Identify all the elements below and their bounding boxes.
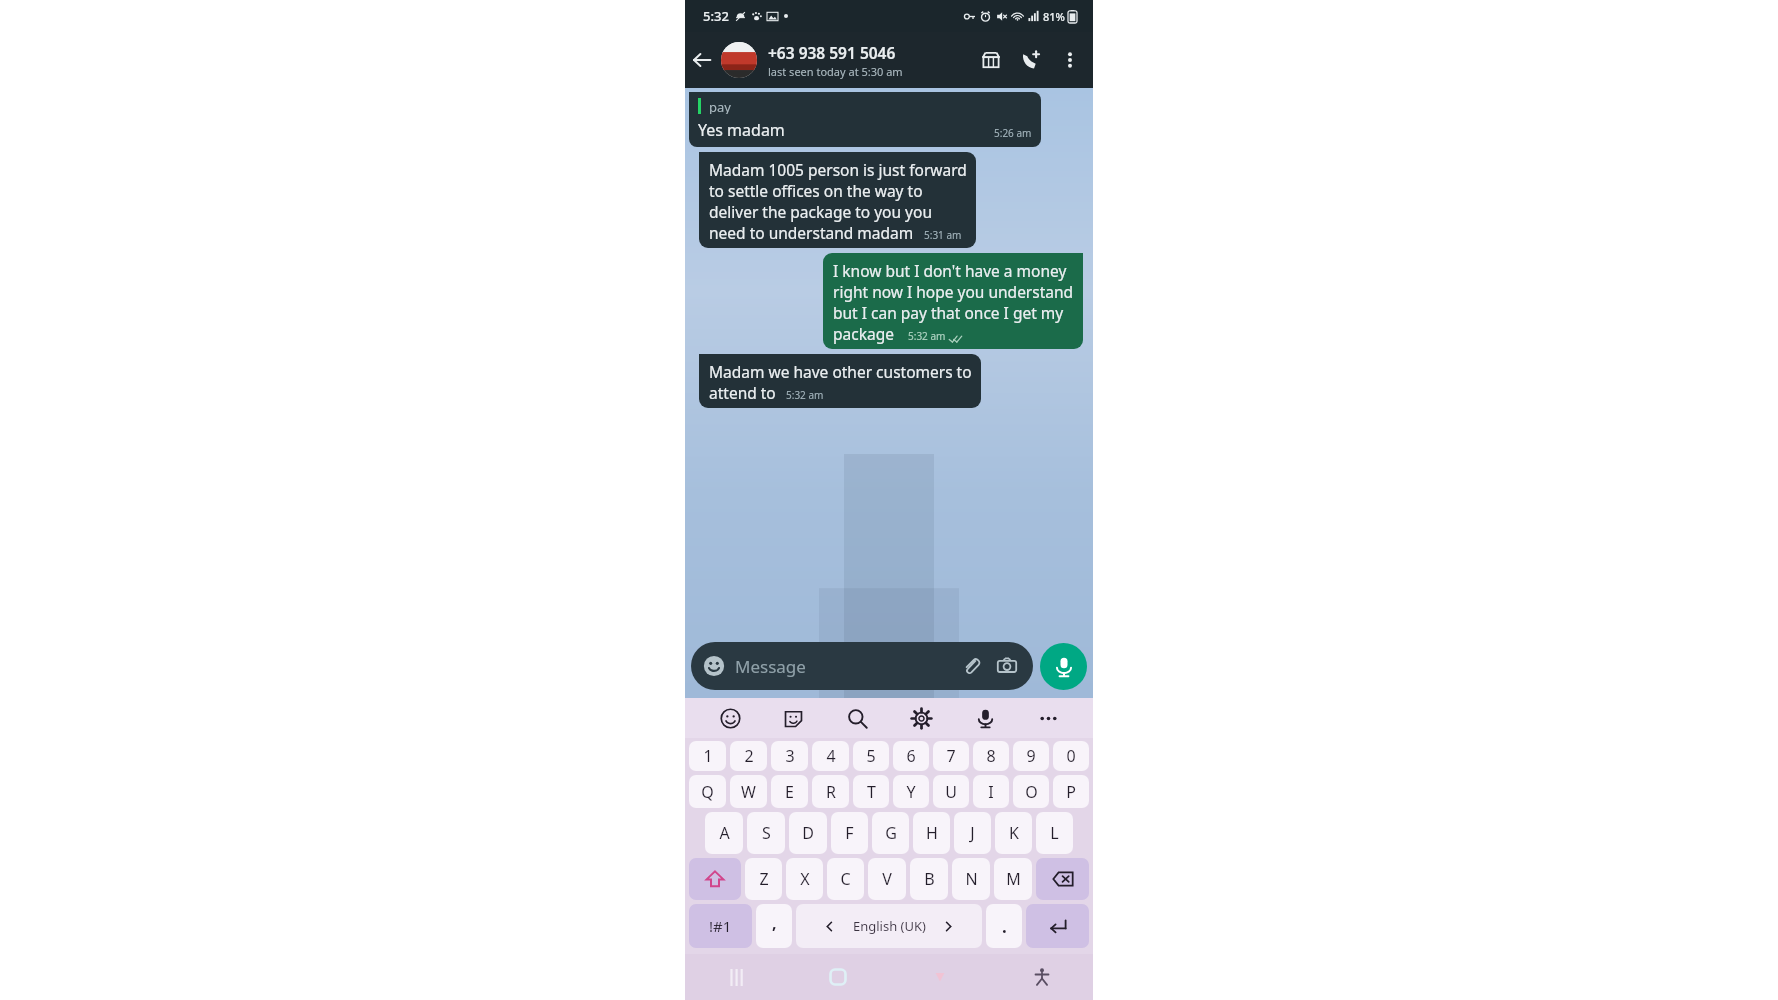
staticText: 5 xyxy=(866,745,876,767)
staticText: Z xyxy=(759,868,769,890)
button[interactable]: 6 xyxy=(893,741,929,771)
button[interactable]: Shift xyxy=(689,858,741,900)
staticText: J xyxy=(970,822,975,844)
button[interactable]: , xyxy=(756,904,792,948)
staticText: deliver the package to you you xyxy=(709,201,932,222)
button[interactable]: W xyxy=(730,775,767,808)
staticText: Y xyxy=(906,781,916,803)
button[interactable]: K xyxy=(995,812,1032,854)
button[interactable]: 8 xyxy=(973,741,1009,771)
button[interactable]: G xyxy=(872,812,909,854)
button[interactable]: Business catalog xyxy=(971,40,1011,80)
staticText: 5:26 am xyxy=(994,126,1032,140)
button[interactable]: 4 xyxy=(812,741,849,771)
button[interactable]: Stickers xyxy=(774,699,812,737)
staticText: Message xyxy=(735,655,806,678)
button[interactable]: V xyxy=(868,858,906,900)
button[interactable]: Accessibility xyxy=(991,954,1093,1000)
button[interactable]: J xyxy=(954,812,991,854)
button[interactable]: X xyxy=(786,858,823,900)
button[interactable]: 2 xyxy=(730,741,767,771)
button[interactable]: M xyxy=(994,858,1032,900)
button[interactable]: 3 xyxy=(771,741,808,771)
staticText: Madam we have other customers to xyxy=(709,361,972,382)
staticText: D xyxy=(802,822,814,844)
button[interactable]: S xyxy=(747,812,785,854)
button[interactable]: Settings xyxy=(902,699,940,737)
button[interactable]: Emoji xyxy=(711,699,749,737)
button[interactable]: Back xyxy=(685,43,719,77)
staticText: to settle offices on the way to xyxy=(709,180,923,201)
staticText: last seen today at 5:30 am xyxy=(768,64,903,79)
button[interactable]: C xyxy=(827,858,864,900)
staticText: 5:31 am xyxy=(924,228,962,242)
staticText: Yes madam xyxy=(698,119,785,141)
staticText: 2 xyxy=(744,745,754,767)
button[interactable]: R xyxy=(812,775,849,808)
button[interactable]: 7 xyxy=(933,741,969,771)
button[interactable]: I xyxy=(973,775,1009,808)
button[interactable]: Message xyxy=(691,642,1033,690)
staticText: 6 xyxy=(906,745,916,767)
button[interactable]: F xyxy=(831,812,868,854)
button[interactable]: Madam 1005 person is just forward xyxy=(699,152,976,248)
staticText: 1 xyxy=(703,745,713,767)
button[interactable]: Z xyxy=(745,858,782,900)
staticText: H xyxy=(926,822,938,844)
button[interactable]: +63 938 591 5046 xyxy=(768,42,971,79)
button[interactable]: 1 xyxy=(689,741,726,771)
button[interactable]: N xyxy=(952,858,990,900)
staticText: 3 xyxy=(785,745,795,767)
button[interactable]: O xyxy=(1013,775,1049,808)
button[interactable]: 5 xyxy=(853,741,889,771)
button[interactable]: 0 xyxy=(1053,741,1089,771)
staticText: pay xyxy=(709,98,731,114)
button[interactable]: Search xyxy=(838,699,876,737)
button[interactable]: Q xyxy=(689,775,726,808)
button[interactable]: I know but I don't have a money xyxy=(823,253,1083,349)
button[interactable]: More options xyxy=(1051,41,1089,79)
staticText: P xyxy=(1066,781,1076,803)
staticText: 5:32 xyxy=(703,7,729,25)
staticText: 4 xyxy=(826,745,836,767)
button[interactable]: Attach xyxy=(957,652,985,680)
button[interactable]: Space, English UK xyxy=(796,904,982,948)
button[interactable]: . xyxy=(986,904,1022,948)
button[interactable]: E xyxy=(771,775,808,808)
staticText: R xyxy=(826,781,836,803)
button[interactable]: B xyxy=(910,858,948,900)
button[interactable]: Voice input xyxy=(966,699,1004,737)
button[interactable]: Backspace xyxy=(1036,858,1089,900)
button[interactable]: Recents xyxy=(685,954,787,1000)
staticText: package xyxy=(833,323,894,344)
staticText: 9 xyxy=(1026,745,1036,767)
button[interactable]: Enter xyxy=(1026,904,1089,948)
button[interactable]: L xyxy=(1036,812,1073,854)
staticText: B xyxy=(924,868,935,890)
button[interactable]: Call xyxy=(1011,40,1051,80)
button[interactable]: D xyxy=(789,812,827,854)
staticText: X xyxy=(800,868,810,890)
button[interactable]: P xyxy=(1053,775,1089,808)
button[interactable]: U xyxy=(933,775,969,808)
button[interactable]: Madam we have other customers to xyxy=(699,354,981,408)
button[interactable]: Camera xyxy=(993,652,1021,680)
staticText: C xyxy=(840,868,851,890)
button[interactable]: !#1 xyxy=(689,904,752,948)
button[interactable]: More xyxy=(1029,699,1067,737)
button[interactable]: A xyxy=(705,812,743,854)
staticText: V xyxy=(882,868,892,890)
staticText: G xyxy=(885,822,897,844)
button[interactable]: pay xyxy=(689,92,1041,147)
button[interactable]: Home xyxy=(787,954,889,1000)
staticText: !#1 xyxy=(709,916,732,936)
button[interactable]: H xyxy=(913,812,950,854)
button[interactable]: T xyxy=(853,775,889,808)
button[interactable]: 9 xyxy=(1013,741,1049,771)
button[interactable]: Y xyxy=(893,775,929,808)
staticText: N xyxy=(965,868,978,890)
staticText: U xyxy=(945,781,957,803)
button[interactable]: Voice message xyxy=(1040,643,1087,690)
button[interactable]: Profile photo xyxy=(721,42,757,78)
